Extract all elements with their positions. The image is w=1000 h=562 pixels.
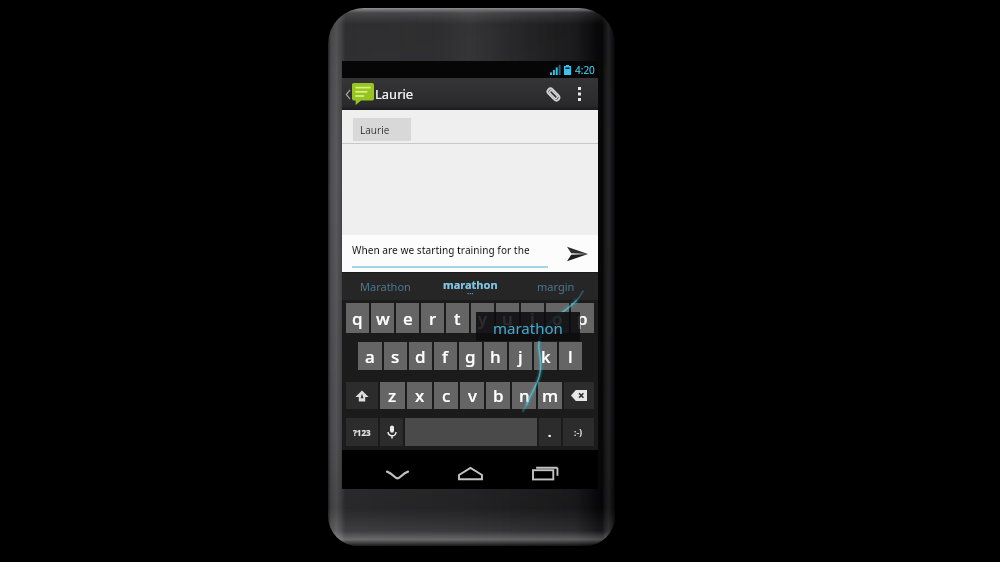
staticText: k	[541, 345, 551, 368]
button[interactable]: Shift	[346, 382, 378, 409]
button[interactable]: Marathon	[342, 273, 428, 300]
button[interactable]: j	[509, 342, 532, 370]
button[interactable]: More options	[568, 78, 590, 110]
staticText: y	[478, 307, 487, 330]
staticText: v	[468, 384, 477, 407]
staticText: h	[490, 345, 501, 368]
staticText: l	[568, 345, 573, 368]
button[interactable]: Voice input	[380, 418, 403, 446]
staticText: When are we starting training for the	[352, 243, 530, 257]
button[interactable]: i	[521, 303, 544, 333]
staticText: 4:20	[575, 63, 595, 77]
button[interactable]: Back	[342, 78, 420, 110]
staticText: marathon	[443, 277, 498, 292]
button[interactable]: r	[421, 303, 444, 333]
button[interactable]: k	[534, 342, 557, 370]
button[interactable]: b	[486, 382, 510, 409]
button[interactable]: Backspace	[564, 382, 594, 409]
staticText: j	[518, 345, 523, 368]
button[interactable]: y	[471, 303, 494, 333]
button[interactable]: p	[571, 303, 594, 333]
button[interactable]: s	[384, 342, 407, 370]
button[interactable]: Laurie	[353, 118, 411, 141]
staticText: d	[415, 345, 426, 368]
button[interactable]: e	[396, 303, 419, 333]
other: Back	[345, 89, 351, 100]
button[interactable]: Send	[556, 235, 598, 272]
button[interactable]: t	[446, 303, 469, 333]
staticText: q	[352, 307, 363, 330]
button[interactable]: c	[434, 382, 458, 409]
staticText: b	[493, 384, 504, 407]
button[interactable]: ?123	[346, 418, 378, 446]
staticText: w	[376, 307, 390, 330]
staticText: marathon	[493, 318, 563, 338]
staticText: ···	[467, 288, 474, 299]
button[interactable]: x	[407, 382, 432, 409]
staticText: Marathon	[360, 279, 411, 294]
button[interactable]: Hide keyboard	[379, 458, 415, 482]
button[interactable]: marathon	[428, 273, 513, 300]
staticText: s	[391, 345, 400, 368]
button[interactable]: Emoji	[563, 418, 594, 446]
button[interactable]: m	[538, 382, 562, 409]
button[interactable]: d	[409, 342, 432, 370]
staticText: n	[519, 384, 530, 407]
button[interactable]: z	[380, 382, 405, 409]
staticText: ?123	[353, 427, 371, 438]
staticText: Laurie	[360, 123, 390, 137]
staticText: f	[442, 345, 449, 368]
button[interactable]: margin	[513, 273, 598, 300]
staticText: :-)	[574, 426, 583, 438]
button[interactable]: Attach	[538, 78, 568, 110]
staticText: a	[365, 345, 375, 368]
button[interactable]: a	[358, 342, 382, 370]
button[interactable]: l	[559, 342, 582, 370]
button[interactable]: f	[434, 342, 457, 370]
button[interactable]: Recents	[528, 458, 564, 482]
staticText: t	[454, 307, 461, 330]
staticText: x	[415, 384, 425, 407]
staticText: Laurie	[375, 85, 414, 103]
staticText: margin	[537, 279, 575, 294]
staticText: m	[542, 384, 559, 407]
button[interactable]: v	[460, 382, 484, 409]
button[interactable]: Home	[452, 458, 488, 482]
staticText: .	[548, 424, 552, 440]
button[interactable]: .	[539, 418, 561, 446]
staticText: r	[429, 307, 437, 330]
button[interactable]: o	[546, 303, 569, 333]
button[interactable]: u	[496, 303, 519, 333]
staticText: e	[403, 307, 413, 330]
staticText: z	[388, 384, 397, 407]
button[interactable]: h	[484, 342, 507, 370]
staticText: i	[530, 307, 535, 330]
staticText: c	[442, 384, 451, 407]
button[interactable]: q	[346, 303, 369, 333]
staticText: g	[465, 345, 476, 368]
staticText: p	[577, 307, 588, 330]
button[interactable]: g	[459, 342, 482, 370]
button[interactable]: n	[512, 382, 536, 409]
staticText: o	[552, 307, 563, 330]
staticText: u	[502, 307, 513, 330]
button[interactable]: w	[371, 303, 394, 333]
